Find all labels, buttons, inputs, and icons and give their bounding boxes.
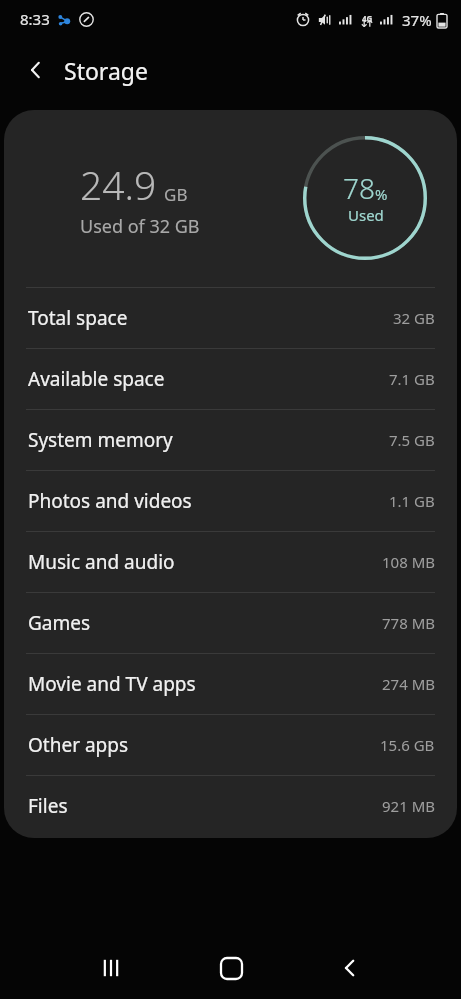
button[interactable]: Back [16, 50, 56, 90]
staticText: Total space [28, 305, 128, 331]
button[interactable]: Recent apps [80, 937, 142, 999]
staticText: 8:33 [20, 9, 50, 29]
staticText: 4G [362, 13, 373, 24]
staticText: 274 MB [382, 674, 435, 694]
button[interactable]: Music and audio [4, 532, 457, 592]
staticText: 108 MB [382, 552, 435, 572]
button[interactable]: System memory [4, 410, 457, 470]
button[interactable]: Home [200, 937, 262, 999]
staticText: 78 [343, 169, 375, 207]
button[interactable]: Games [4, 593, 457, 653]
staticText: Used [348, 205, 384, 225]
staticText: 778 MB [382, 613, 435, 633]
staticText: Games [28, 610, 91, 636]
staticText: Music and audio [28, 549, 175, 575]
staticText: Photos and videos [28, 488, 192, 514]
button[interactable]: Back [319, 937, 381, 999]
staticText: 7.1 GB [389, 369, 435, 389]
staticText: 24.9 [80, 158, 157, 211]
staticText: Other apps [28, 732, 129, 758]
staticText: GB [164, 183, 188, 206]
staticText: System memory [28, 427, 173, 453]
staticText: Used of 32 GB [80, 214, 200, 239]
staticText: 32 GB [393, 308, 435, 328]
staticText: % [375, 184, 388, 204]
button[interactable]: Photos and videos [4, 471, 457, 531]
button[interactable]: Movie and TV apps [4, 654, 457, 714]
staticText: Storage [64, 55, 148, 86]
staticText: Movie and TV apps [28, 671, 196, 697]
staticText: Available space [28, 366, 165, 392]
staticText: 921 MB [382, 796, 435, 816]
staticText: Files [28, 793, 68, 819]
staticText: 15.6 GB [380, 735, 435, 755]
staticText: 37% [402, 10, 432, 30]
staticText: 7.5 GB [389, 430, 435, 450]
button[interactable]: Files [4, 776, 457, 836]
staticText: 1.1 GB [389, 491, 435, 511]
button[interactable]: Other apps [4, 715, 457, 775]
button[interactable]: Total space [4, 288, 457, 348]
button[interactable]: Available space [4, 349, 457, 409]
